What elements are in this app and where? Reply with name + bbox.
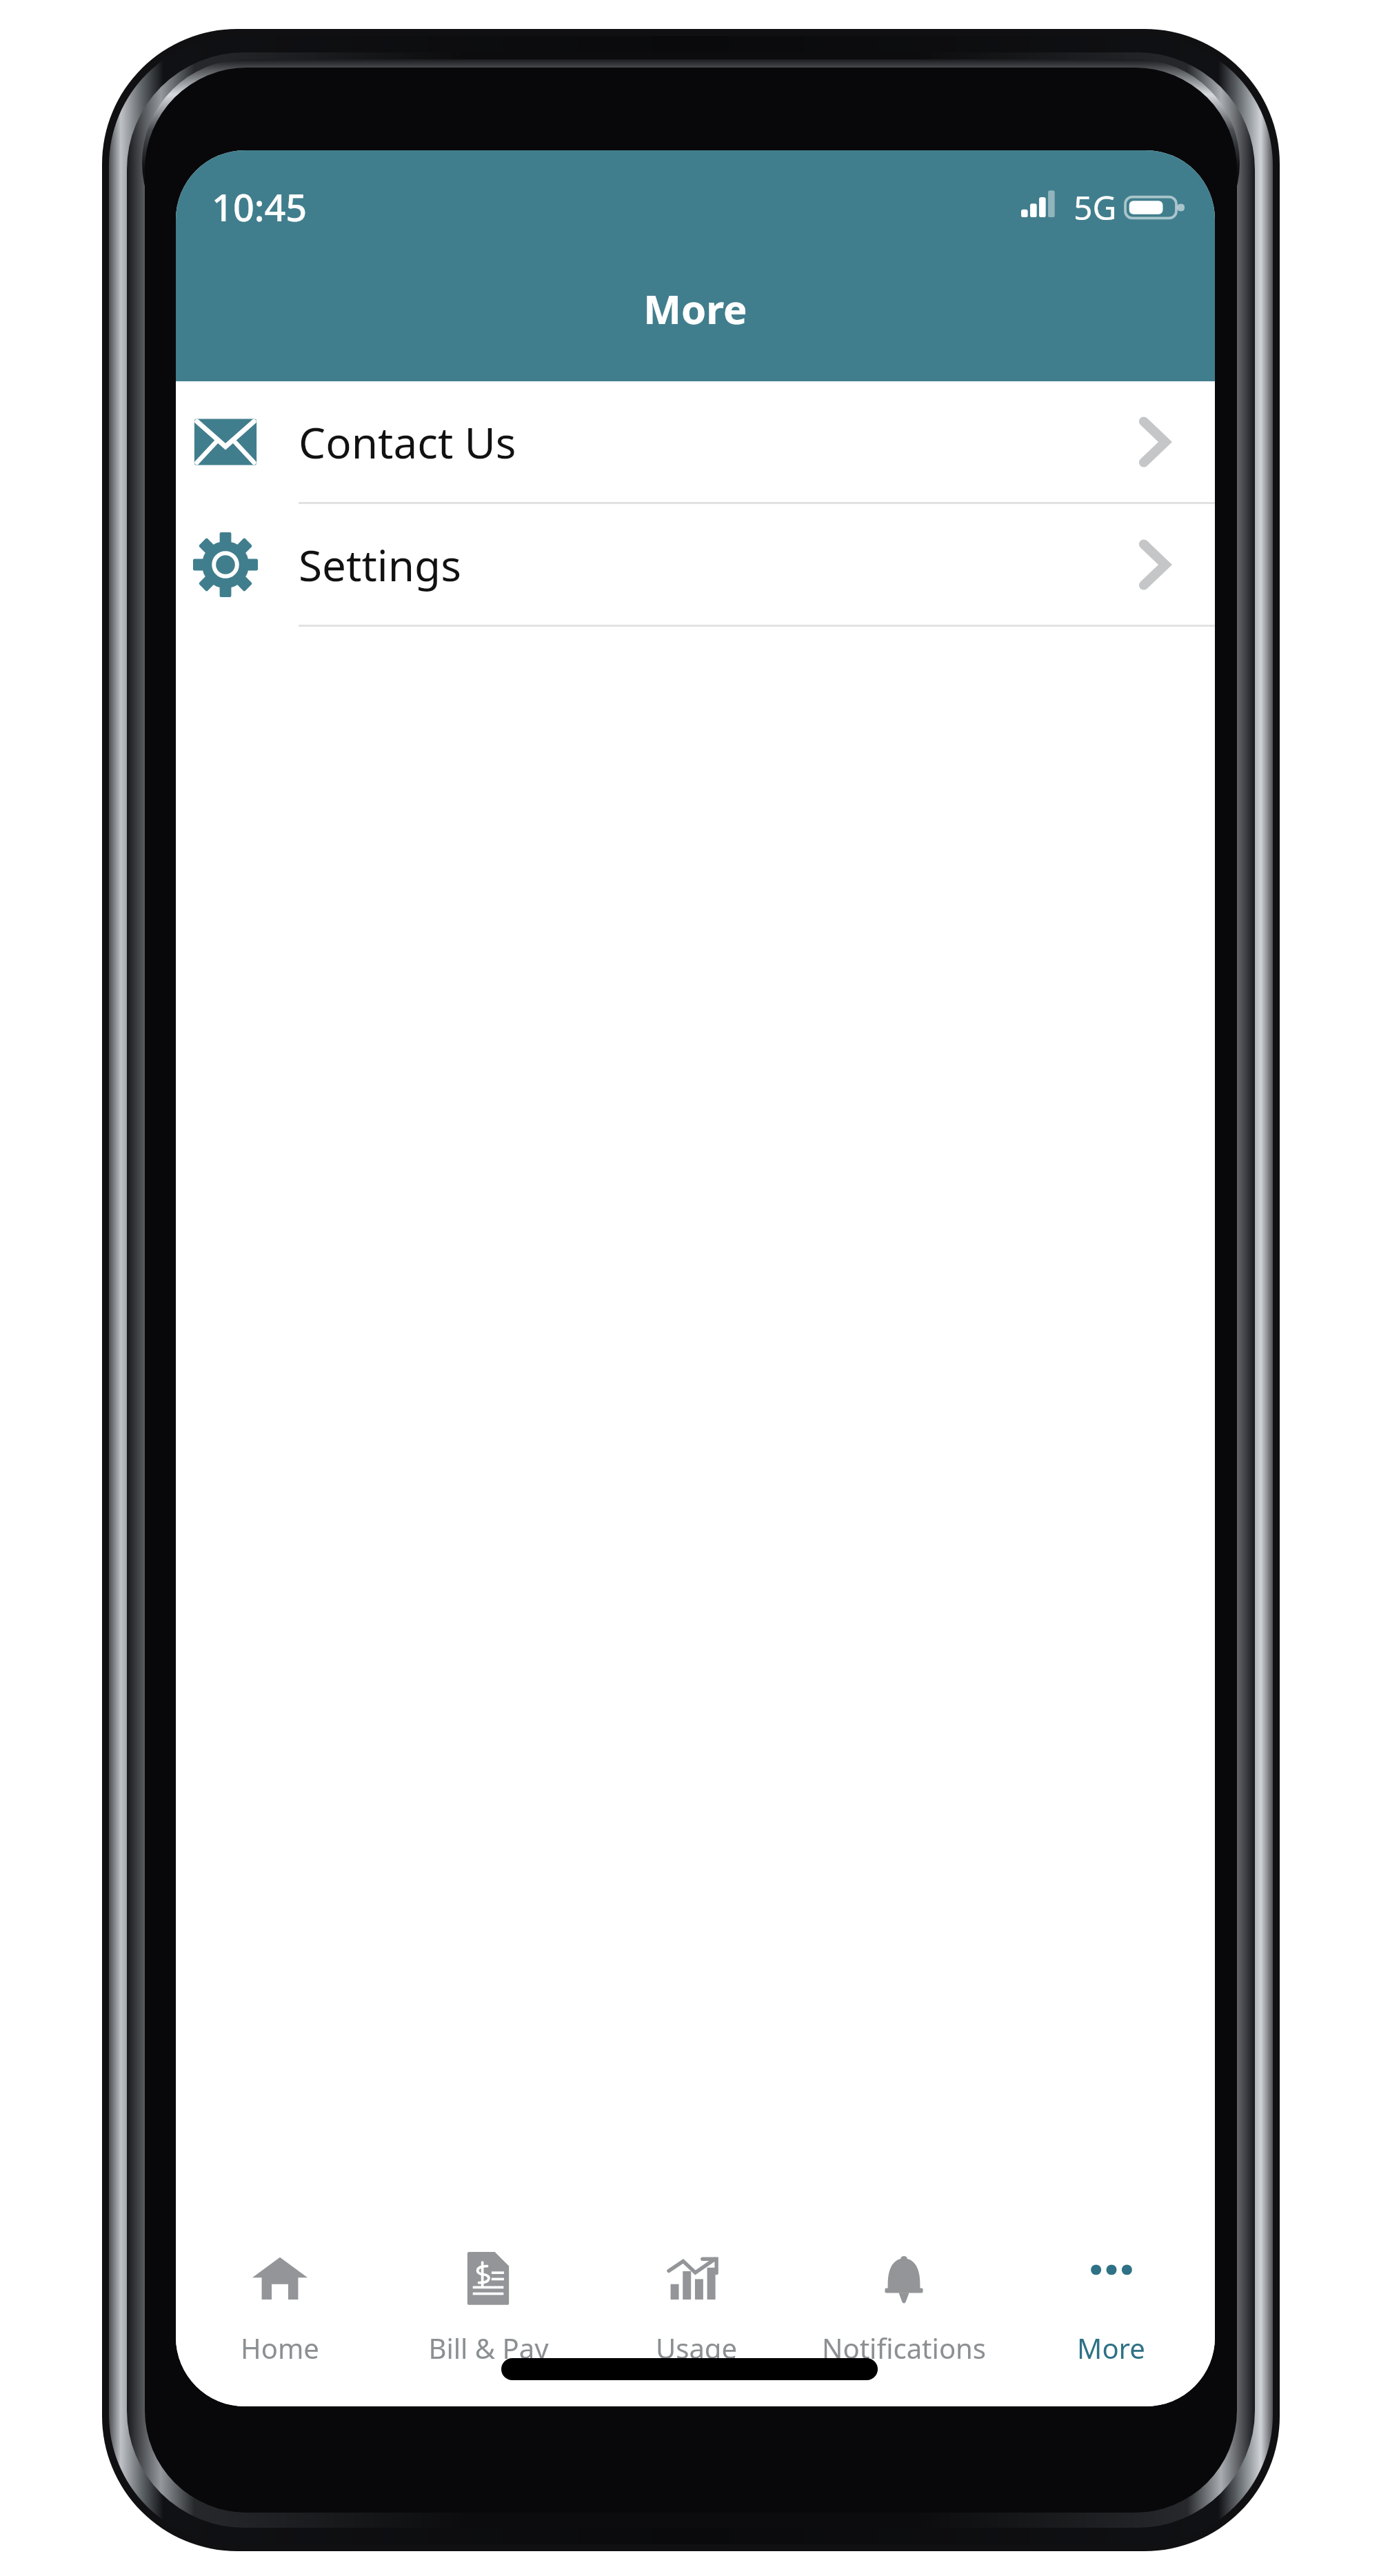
button[interactable]: Home	[176, 2227, 384, 2406]
staticText: 5G	[1074, 185, 1117, 230]
staticText: Home	[241, 2329, 319, 2366]
button[interactable]: Bill & Pay	[384, 2227, 592, 2406]
staticText: Usage	[656, 2329, 737, 2366]
button[interactable]: Usage	[592, 2227, 800, 2406]
staticText: More	[643, 281, 747, 336]
staticText: More	[1077, 2329, 1145, 2366]
button[interactable]: Settings	[176, 504, 1215, 627]
staticText: Notifications	[822, 2329, 986, 2366]
staticText: Contact Us	[299, 413, 516, 471]
staticText: Settings	[299, 536, 461, 594]
staticText: 10:45	[212, 181, 308, 232]
button[interactable]: Notifications	[800, 2227, 1007, 2406]
staticText: Bill & Pay	[428, 2329, 549, 2366]
button[interactable]: More	[1007, 2227, 1215, 2406]
button[interactable]: Contact Us	[176, 381, 1215, 504]
